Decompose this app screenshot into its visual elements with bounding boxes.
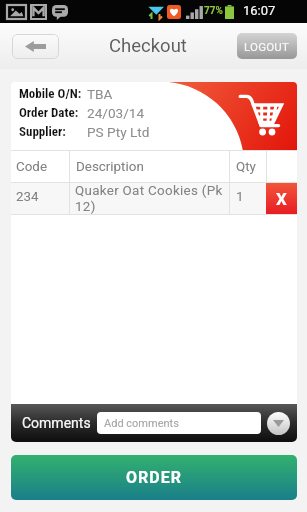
staticText: 234	[16, 189, 39, 205]
staticText: TBA	[87, 86, 113, 102]
staticText: Order Date:	[19, 105, 87, 120]
staticText: 1	[236, 189, 244, 205]
staticText: LOGOUT	[244, 40, 290, 53]
staticText: Comments	[22, 415, 91, 431]
staticText: 16:07	[243, 3, 276, 18]
staticText: Quaker Oat Cookies (Pk 12)	[75, 183, 229, 214]
staticText: X	[276, 189, 287, 209]
button[interactable]: Remove item	[266, 183, 297, 214]
button[interactable]: ORDER	[11, 455, 297, 500]
staticText: PS Pty Ltd	[87, 124, 150, 140]
button[interactable]: 234	[11, 183, 297, 214]
button[interactable]: LOGOUT	[237, 33, 297, 59]
staticText: Mobile O/N:	[19, 86, 87, 101]
staticText: Checkout	[109, 35, 187, 57]
staticText: 24/03/14	[87, 105, 145, 121]
staticText: Description	[76, 159, 144, 175]
staticText: Add comments	[104, 417, 179, 430]
staticText: 77%	[204, 5, 223, 17]
staticText: Supplier:	[19, 124, 87, 139]
staticText: Qty	[236, 159, 256, 175]
staticText: ORDER	[126, 468, 182, 487]
button[interactable]: Show options	[267, 412, 290, 435]
button[interactable]: Add comments	[97, 412, 261, 434]
staticText: Code	[16, 159, 48, 175]
button[interactable]: Back	[12, 34, 59, 59]
